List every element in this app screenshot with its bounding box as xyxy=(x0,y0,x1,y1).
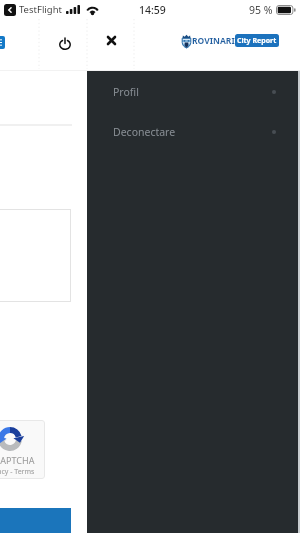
staticText: reCAPTCHA xyxy=(0,454,35,466)
button[interactable]: Close xyxy=(101,30,122,51)
button[interactable]: Menu xyxy=(0,36,5,49)
staticText: ROVINARI xyxy=(192,35,235,47)
button[interactable]: Deconectare xyxy=(87,112,300,152)
staticText: TestFlight xyxy=(19,3,62,16)
staticText: 95 % xyxy=(249,3,273,17)
button[interactable]: Power xyxy=(54,33,75,54)
button[interactable]: Profil xyxy=(87,72,300,112)
staticText: City Report xyxy=(237,36,277,46)
staticText: Deconectare xyxy=(113,125,176,139)
staticText: 14:59 xyxy=(139,3,166,17)
staticText: Profil xyxy=(113,85,139,99)
staticText: Privacy - Terms xyxy=(0,467,35,477)
